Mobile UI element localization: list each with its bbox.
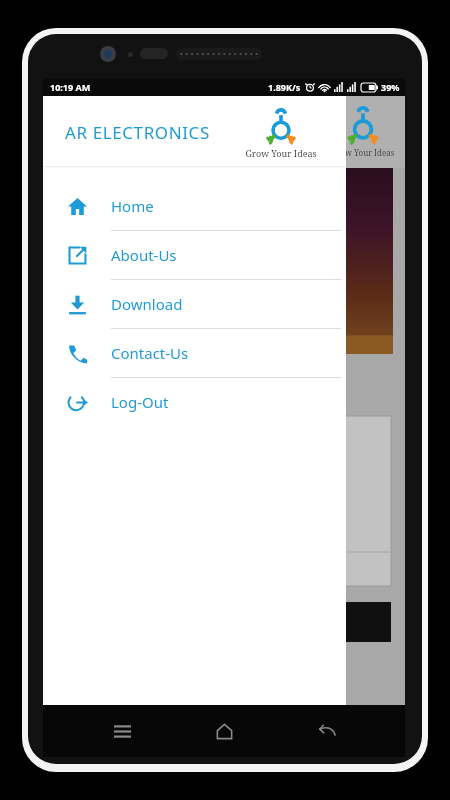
button[interactable]: Back [303, 707, 351, 755]
button[interactable]: Contact-Us [43, 329, 346, 377]
staticText: Log-Out [111, 392, 169, 412]
staticText: Grow Your Ideas [331, 147, 395, 158]
staticText: 39% [381, 81, 400, 93]
staticText: 1.89K/s [268, 81, 301, 93]
button[interactable]: About-Us [43, 231, 346, 279]
button[interactable]: Home [200, 707, 248, 755]
staticText: AR ELECTRONICS [65, 121, 210, 144]
button[interactable]: Log-Out [43, 378, 346, 426]
button[interactable]: Download [43, 280, 346, 328]
button[interactable]: Home [43, 182, 346, 230]
staticText: Contact-Us [111, 343, 189, 363]
staticText: Home [111, 196, 154, 216]
staticText: Grow Your Ideas [245, 147, 317, 159]
button[interactable]: Recent apps [98, 707, 146, 755]
staticText: Download [111, 294, 183, 314]
staticText: About-Us [111, 245, 177, 265]
staticText: 10:19 AM [50, 81, 91, 93]
